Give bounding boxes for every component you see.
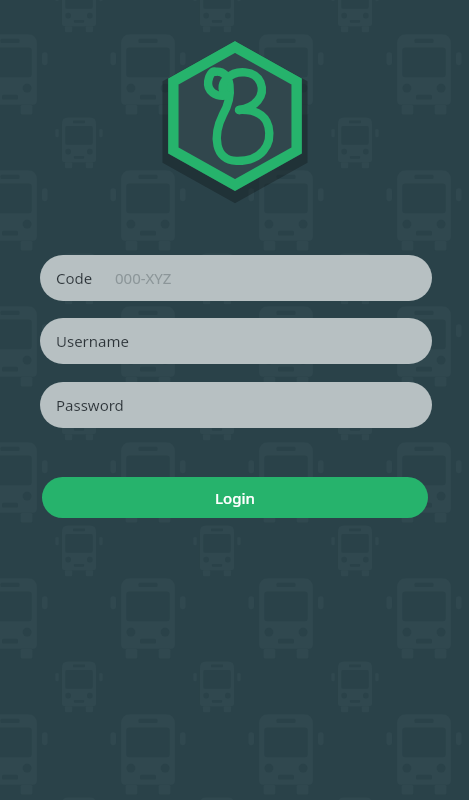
staticText: Password <box>56 395 124 415</box>
button[interactable]: Code <box>40 255 432 301</box>
staticText: Login <box>215 488 255 508</box>
staticText: 000-XYZ <box>115 268 172 288</box>
staticText: Username <box>56 331 129 351</box>
button[interactable]: Password <box>40 382 432 428</box>
other: App logo <box>160 38 310 206</box>
button[interactable]: Username <box>40 318 432 364</box>
staticText: Code <box>56 268 93 288</box>
button[interactable]: Login <box>42 477 428 518</box>
